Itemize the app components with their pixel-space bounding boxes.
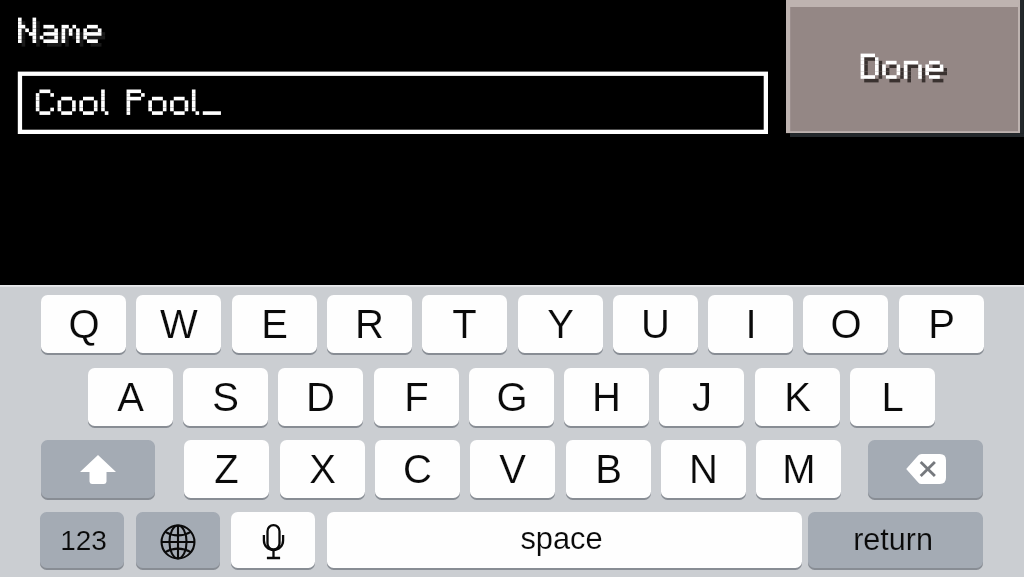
- staticText: D: [306, 375, 335, 420]
- staticText: T: [452, 302, 477, 347]
- staticText: B: [595, 447, 622, 492]
- staticText: L: [881, 375, 904, 420]
- button[interactable]: Z: [184, 440, 269, 498]
- staticText: G: [496, 375, 528, 420]
- button[interactable]: E: [232, 295, 317, 353]
- staticText: return: [853, 522, 933, 556]
- button[interactable]: 123: [40, 512, 124, 568]
- button[interactable]: G: [469, 368, 554, 426]
- staticText: Y: [547, 302, 574, 347]
- staticText: J: [692, 375, 712, 420]
- button[interactable]: K: [755, 368, 840, 426]
- button[interactable]: Y: [518, 295, 603, 353]
- staticText: P: [928, 302, 955, 347]
- button[interactable]: I: [708, 295, 793, 353]
- staticText: space: [520, 521, 603, 555]
- button[interactable]: N: [661, 440, 746, 498]
- staticText: I: [745, 302, 757, 347]
- staticText: Q: [68, 302, 100, 347]
- button[interactable]: U: [613, 295, 698, 353]
- button[interactable]: Next keyboard: [136, 512, 220, 568]
- staticText: K: [784, 375, 811, 420]
- button[interactable]: O: [803, 295, 888, 353]
- button[interactable]: J: [659, 368, 744, 426]
- button[interactable]: space: [327, 512, 802, 568]
- button[interactable]: V: [470, 440, 555, 498]
- button[interactable]: M: [756, 440, 841, 498]
- button[interactable]: Dictation: [231, 512, 315, 568]
- staticText: F: [404, 375, 429, 420]
- staticText: V: [499, 447, 526, 492]
- staticText: U: [641, 302, 670, 347]
- staticText: H: [592, 375, 621, 420]
- button[interactable]: L: [850, 368, 935, 426]
- staticText: 123: [60, 525, 107, 556]
- button[interactable]: F: [374, 368, 459, 426]
- button[interactable]: P: [899, 295, 984, 353]
- button[interactable]: S: [183, 368, 268, 426]
- staticText: X: [309, 447, 336, 492]
- button[interactable]: return: [808, 512, 983, 568]
- staticText: C: [403, 447, 432, 492]
- staticText: S: [212, 375, 239, 420]
- staticText: A: [117, 375, 144, 420]
- staticText: M: [782, 447, 816, 492]
- staticText: O: [830, 302, 862, 347]
- button[interactable]: C: [375, 440, 460, 498]
- button[interactable]: X: [280, 440, 365, 498]
- button[interactable]: B: [566, 440, 651, 498]
- button[interactable]: R: [327, 295, 412, 353]
- button[interactable]: H: [564, 368, 649, 426]
- button[interactable]: Done: [786, 0, 1024, 137]
- button[interactable]: T: [422, 295, 507, 353]
- staticText: E: [261, 302, 288, 347]
- button[interactable]: A: [88, 368, 173, 426]
- button[interactable]: Q: [41, 295, 126, 353]
- button[interactable]: D: [278, 368, 363, 426]
- staticText: Z: [214, 447, 239, 492]
- button[interactable]: W: [136, 295, 221, 353]
- staticText: R: [355, 302, 384, 347]
- staticText: N: [689, 447, 718, 492]
- button[interactable]: Shift: [41, 440, 155, 498]
- staticText: W: [160, 302, 198, 347]
- button[interactable]: Backspace: [868, 440, 983, 498]
